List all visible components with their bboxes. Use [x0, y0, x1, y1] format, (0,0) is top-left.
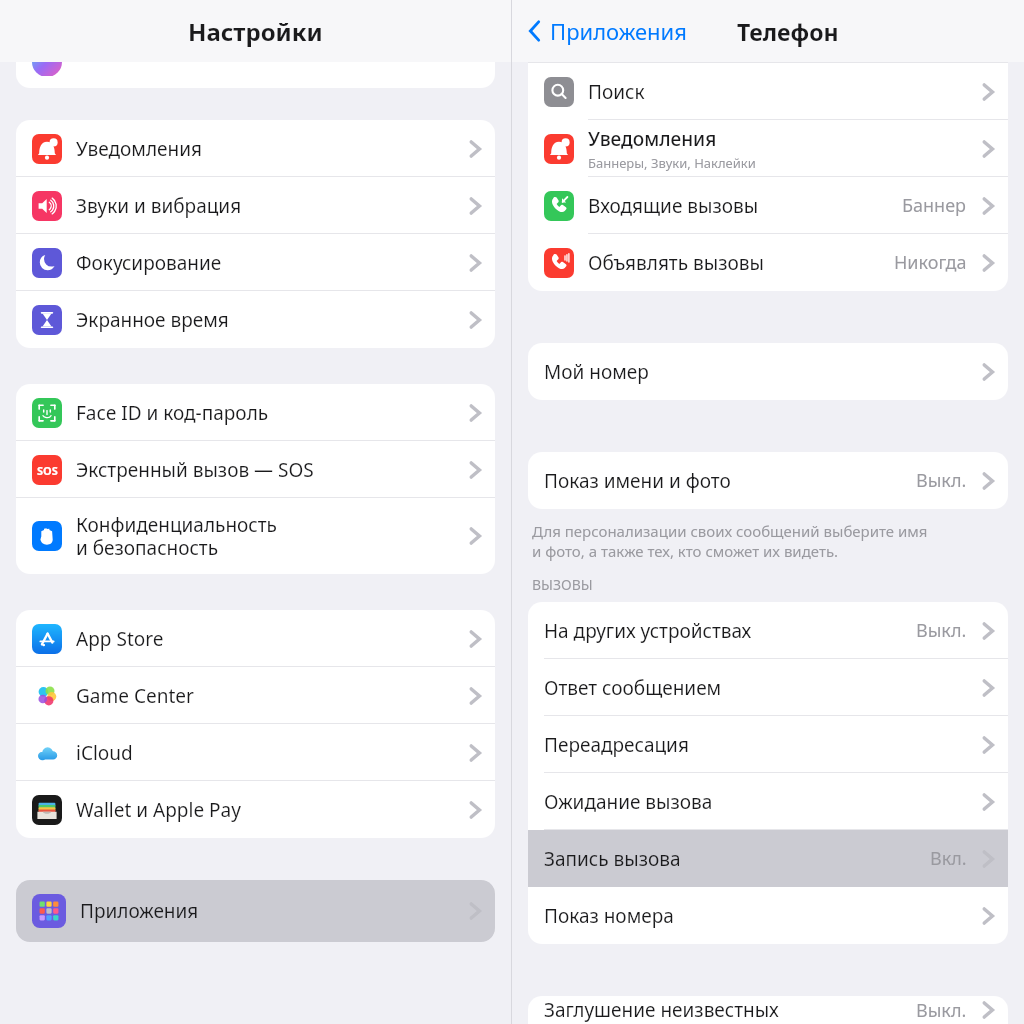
button[interactable]: Wallet и Apple Pay: [16, 781, 495, 838]
staticText: Приложения: [80, 898, 464, 924]
button[interactable]: Фокусирование: [16, 234, 495, 291]
staticText: Показ имени и фото: [544, 468, 731, 494]
button[interactable]: Ответ сообщением: [528, 659, 1008, 716]
button[interactable]: Звуки и вибрация: [16, 177, 495, 234]
staticText: Мой номер: [544, 359, 649, 385]
button[interactable]: Запись вызова: [528, 830, 1008, 887]
staticText: iCloud: [76, 740, 133, 766]
staticText: Заглушение неизвестных: [544, 997, 779, 1023]
staticText: Приложения: [550, 16, 687, 46]
button[interactable]: Ожидание вызова: [528, 773, 1008, 830]
staticText: Настройки: [188, 15, 323, 48]
staticText: App Store: [76, 626, 164, 652]
staticText: Объявлять вызовы: [588, 250, 764, 276]
button[interactable]: Объявлять вызовы: [528, 234, 1008, 291]
staticText: Баннеры, Звуки, Наклейки: [588, 154, 756, 172]
staticText: Wallet и Apple Pay: [76, 797, 241, 823]
staticText: Показ номера: [544, 903, 674, 929]
staticText: Конфиденциальность и безопасность: [76, 512, 277, 561]
staticText: Переадресация: [544, 732, 689, 758]
staticText: Выкл.: [916, 468, 967, 493]
staticText: Экранное время: [76, 307, 229, 333]
button[interactable]: Переадресация: [528, 716, 1008, 773]
button[interactable]: Входящие вызовы: [528, 177, 1008, 234]
button[interactable]: Экранное время: [16, 291, 495, 348]
button[interactable]: Назад к Приложения: [522, 10, 693, 52]
staticText: ВЫЗОВЫ: [532, 575, 593, 594]
staticText: Звуки и вибрация: [76, 193, 242, 219]
button[interactable]: Приложения: [16, 880, 495, 942]
button[interactable]: Показ номера: [528, 887, 1008, 944]
staticText: Для персонализации своих сообщений выбер…: [532, 521, 928, 561]
button[interactable]: Мой номер: [528, 343, 1008, 400]
staticText: Никогда: [894, 250, 967, 275]
staticText: Баннер: [902, 193, 967, 218]
button[interactable]: SOS: [16, 441, 495, 498]
staticText: Запись вызова: [544, 846, 681, 872]
button[interactable]: Уведомления: [16, 120, 495, 177]
staticText: Входящие вызовы: [588, 193, 759, 219]
staticText: Ожидание вызова: [544, 789, 713, 815]
button[interactable]: App Store: [16, 610, 495, 667]
staticText: Экстренный вызов — SOS: [76, 457, 314, 483]
staticText: Game Center: [76, 683, 194, 709]
staticText: Уведомления: [76, 136, 202, 162]
staticText: На других устройствах: [544, 618, 752, 644]
button[interactable]: Game Center: [16, 667, 495, 724]
staticText: Уведомления: [588, 126, 717, 152]
button[interactable]: Показ имени и фото: [528, 452, 1008, 509]
button[interactable]: На других устройствах: [528, 602, 1008, 659]
button[interactable]: Face ID и код-пароль: [16, 384, 495, 441]
button[interactable]: Уведомления: [528, 120, 1008, 177]
button[interactable]: Поиск: [528, 63, 1008, 120]
staticText: Выкл.: [916, 618, 967, 643]
button[interactable]: [16, 62, 495, 88]
staticText: Ответ сообщением: [544, 675, 722, 701]
staticText: Вкл.: [930, 846, 967, 871]
button[interactable]: iCloud: [16, 724, 495, 781]
staticText: Поиск: [588, 79, 645, 105]
staticText: Выкл.: [916, 998, 967, 1023]
staticText: Фокусирование: [76, 250, 222, 276]
button[interactable]: Конфиденциальность и безопасность: [16, 498, 495, 574]
staticText: Face ID и код-пароль: [76, 400, 269, 426]
staticText: Телефон: [737, 16, 839, 47]
button[interactable]: Заглушение неизвестных: [528, 996, 1008, 1024]
staticText: SOS: [37, 463, 58, 478]
